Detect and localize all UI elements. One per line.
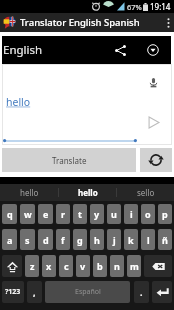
- staticText: r: [61, 208, 66, 220]
- button[interactable]: .: [134, 281, 149, 303]
- staticText: 19:14: [150, 1, 171, 12]
- staticText: Translator English Spanish: [20, 16, 140, 29]
- staticText: hello: [20, 187, 39, 198]
- button[interactable]: j: [107, 229, 121, 250]
- button[interactable]: More options: [162, 13, 174, 32]
- staticText: sello: [137, 187, 155, 198]
- button[interactable]: d: [38, 229, 53, 250]
- staticText: m: [130, 260, 139, 272]
- button[interactable]: x: [42, 255, 56, 277]
- button[interactable]: w: [20, 204, 35, 224]
- staticText: ?123: [5, 287, 21, 297]
- staticText: v: [80, 260, 86, 272]
- staticText: g: [77, 234, 83, 246]
- button[interactable]: Enter: [152, 281, 172, 303]
- staticText: 67%: [127, 2, 142, 12]
- button[interactable]: s: [20, 229, 35, 250]
- staticText: c: [64, 260, 69, 272]
- button[interactable]: ,: [27, 281, 42, 303]
- button[interactable]: y: [90, 204, 104, 224]
- staticText: English: [3, 42, 43, 58]
- staticText: q: [7, 208, 13, 220]
- staticText: w: [24, 208, 32, 220]
- staticText: ,: [33, 286, 36, 298]
- button[interactable]: m: [127, 255, 141, 277]
- staticText: j: [113, 234, 116, 246]
- staticText: x: [46, 260, 52, 272]
- staticText: Español: [75, 287, 101, 297]
- staticText: s: [25, 234, 30, 246]
- button[interactable]: u: [107, 204, 121, 224]
- button[interactable]: l: [141, 229, 155, 250]
- button[interactable]: sello: [117, 184, 174, 201]
- staticText: b: [97, 260, 103, 272]
- staticText: p: [162, 208, 168, 220]
- button[interactable]: t: [73, 204, 87, 224]
- button[interactable]: z: [25, 255, 39, 277]
- button[interactable]: hello: [0, 184, 58, 201]
- button[interactable]: h: [90, 229, 104, 250]
- button[interactable]: f: [56, 229, 70, 250]
- staticText: t: [78, 208, 82, 220]
- button[interactable]: ñ: [158, 229, 172, 250]
- button[interactable]: q: [2, 204, 17, 224]
- staticText: ñ: [162, 234, 168, 246]
- button[interactable]: ?123: [2, 281, 24, 303]
- staticText: n: [114, 260, 120, 272]
- staticText: Translate: [52, 155, 87, 166]
- staticText: hello: [78, 187, 98, 198]
- button[interactable]: e: [38, 204, 53, 224]
- staticText: o: [145, 208, 151, 220]
- staticText: u: [111, 208, 117, 220]
- staticText: a: [7, 234, 13, 246]
- button[interactable]: Backspace: [144, 255, 172, 277]
- staticText: l: [147, 234, 150, 246]
- button[interactable]: g: [73, 229, 87, 250]
- button[interactable]: Voice input: [146, 75, 160, 89]
- button[interactable]: Swap languages: [140, 148, 172, 172]
- button[interactable]: hello: [59, 184, 116, 201]
- button[interactable]: Expand: [142, 36, 164, 64]
- button[interactable]: Translate: [2, 148, 136, 172]
- staticText: h: [94, 234, 100, 246]
- staticText: hello: [6, 95, 31, 109]
- button[interactable]: Play: [145, 114, 161, 130]
- button[interactable]: Español: [45, 281, 130, 303]
- button[interactable]: r: [56, 204, 70, 224]
- button[interactable]: Shift: [2, 255, 22, 277]
- button[interactable]: i: [124, 204, 138, 224]
- button[interactable]: c: [59, 255, 73, 277]
- staticText: d: [43, 234, 49, 246]
- staticText: k: [128, 234, 134, 246]
- staticText: f: [61, 234, 65, 246]
- staticText: e: [43, 208, 49, 220]
- button[interactable]: k: [124, 229, 138, 250]
- button[interactable]: v: [76, 255, 90, 277]
- staticText: i: [130, 208, 133, 220]
- button[interactable]: n: [110, 255, 124, 277]
- button[interactable]: p: [158, 204, 172, 224]
- button[interactable]: Share: [109, 36, 131, 64]
- button[interactable]: English: [3, 42, 43, 58]
- button[interactable]: o: [141, 204, 155, 224]
- staticText: y: [94, 208, 100, 220]
- staticText: .: [140, 286, 143, 298]
- button[interactable]: b: [93, 255, 107, 277]
- staticText: z: [30, 260, 35, 272]
- button[interactable]: a: [2, 229, 17, 250]
